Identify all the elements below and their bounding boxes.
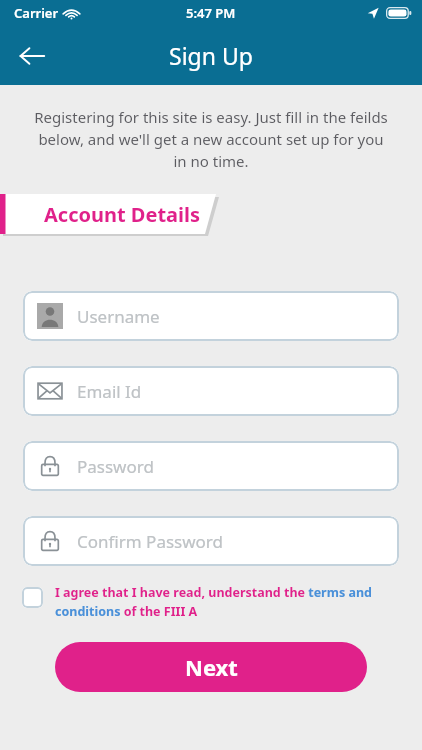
staticText: Registering for this site is easy. Just … [34, 107, 388, 172]
staticText: Password [77, 455, 154, 478]
staticText: Confirm Password [77, 530, 223, 553]
button[interactable]: Confirm Password [23, 516, 399, 566]
staticText: Carrier [14, 4, 59, 22]
button[interactable]: I agree that I have read, understand the… [22, 584, 404, 620]
staticText: Account Details [44, 201, 201, 228]
button[interactable]: Username [23, 291, 399, 341]
button[interactable]: Password [23, 441, 399, 491]
staticText: 5:47 PM [186, 4, 236, 22]
staticText: Email Id [77, 380, 142, 403]
button[interactable]: Email Id [23, 366, 399, 416]
button[interactable]: Account Details [0, 194, 422, 236]
button[interactable]: Next [55, 642, 367, 692]
staticText: Username [77, 305, 160, 328]
staticText: Next [185, 652, 238, 682]
button[interactable]: Back [8, 32, 56, 80]
staticText: I agree that I have read, understand the… [55, 584, 404, 620]
staticText: Sign Up [169, 40, 253, 71]
